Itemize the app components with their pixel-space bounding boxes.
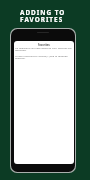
staticText: No questions you have added to your favo… bbox=[15, 46, 74, 52]
button[interactable]: Favorites: bbox=[10, 28, 76, 173]
staticText: ADDING TO FAVORITES bbox=[20, 8, 66, 24]
staticText: To add a favorite by clicking (+) and to… bbox=[15, 54, 74, 60]
staticText: Favorites: bbox=[38, 43, 51, 46]
